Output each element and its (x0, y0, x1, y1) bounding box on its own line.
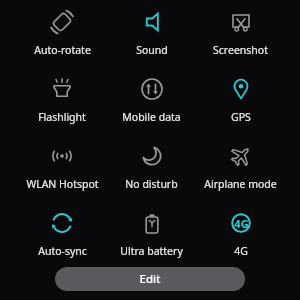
staticText: 4G (234, 216, 249, 231)
staticText: GPS (231, 110, 251, 124)
button[interactable]: WLAN Hotspot (17, 141, 107, 208)
staticText: Auto-sync (38, 244, 87, 258)
button[interactable]: Mobile data (107, 74, 196, 141)
staticText: Edit (139, 271, 161, 287)
button[interactable]: No disturb (107, 141, 196, 208)
staticText: 4G (234, 244, 248, 258)
staticText: Flashlight (38, 110, 86, 124)
staticText: Ultra battery (120, 244, 183, 258)
button[interactable]: Airplane mode (196, 141, 285, 208)
button[interactable]: GPS (196, 74, 285, 141)
button[interactable]: Edit (55, 267, 245, 291)
button[interactable]: Ultra battery (107, 208, 196, 275)
staticText: Sound (136, 43, 168, 57)
staticText: No disturb (125, 177, 178, 191)
staticText: Airplane mode (204, 177, 277, 191)
button[interactable]: Sound (107, 7, 196, 74)
staticText: Auto-rotate (34, 43, 91, 57)
button[interactable]: Auto-sync (17, 208, 107, 275)
button[interactable]: Screenshot (196, 7, 285, 74)
staticText: Screenshot (213, 43, 268, 57)
staticText: Mobile data (122, 110, 181, 124)
button[interactable]: 4G (196, 208, 285, 275)
button[interactable]: Auto-rotate (17, 7, 107, 74)
button[interactable]: Flashlight (17, 74, 107, 141)
staticText: WLAN Hotspot (26, 177, 99, 191)
